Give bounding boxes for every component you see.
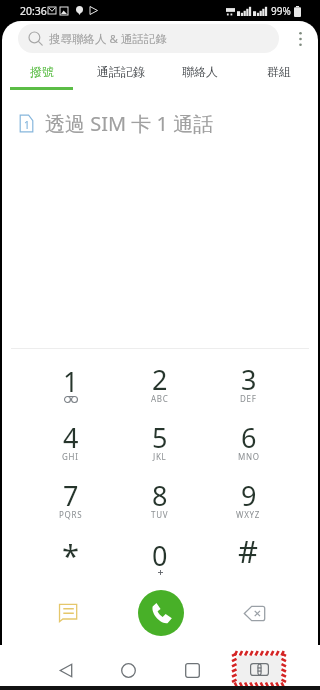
staticText: JKL: [153, 451, 167, 462]
button[interactable]: 5: [115, 407, 204, 465]
button[interactable]: 6: [204, 407, 293, 465]
staticText: 6: [241, 419, 257, 456]
button[interactable]: 通話記錄: [81, 56, 160, 91]
staticText: PQRS: [59, 509, 83, 520]
button[interactable]: 7: [26, 465, 115, 523]
button[interactable]: Backspace: [207, 581, 300, 645]
staticText: 透過 SIM 卡 1 通話: [45, 110, 214, 137]
button[interactable]: 1: [26, 349, 115, 407]
staticText: DEF: [240, 393, 257, 404]
button[interactable]: 3: [204, 349, 293, 407]
button[interactable]: Home: [110, 652, 146, 688]
button[interactable]: 群組: [239, 56, 318, 91]
staticText: 8: [152, 477, 168, 514]
staticText: 1: [24, 118, 30, 132]
staticText: 4: [63, 419, 79, 456]
staticText: 0: [152, 537, 168, 574]
button[interactable]: 聯絡人: [160, 56, 239, 91]
button[interactable]: #: [204, 523, 293, 581]
staticText: 聯絡人: [182, 64, 218, 79]
staticText: 通話記錄: [97, 64, 145, 79]
button[interactable]: Pop-up view: [232, 651, 286, 687]
button[interactable]: 2: [115, 349, 204, 407]
staticText: 20:36: [20, 4, 47, 18]
staticText: MNO: [238, 451, 260, 462]
button[interactable]: 撥號: [2, 56, 81, 91]
staticText: *: [62, 534, 80, 576]
staticText: 7: [63, 477, 79, 514]
button[interactable]: *: [26, 523, 115, 581]
button[interactable]: Send message: [20, 581, 114, 645]
staticText: 撥號: [30, 64, 54, 79]
staticText: TUV: [151, 509, 169, 520]
staticText: 搜尋聯絡人 & 通話記錄: [49, 31, 167, 47]
button[interactable]: 0: [115, 523, 204, 581]
button[interactable]: Back: [48, 652, 84, 688]
staticText: #: [238, 530, 259, 572]
staticText: 2: [152, 361, 168, 398]
staticText: ABC: [151, 393, 169, 404]
staticText: 9: [241, 477, 257, 514]
staticText: 群組: [267, 64, 291, 79]
button[interactable]: 8: [115, 465, 204, 523]
button[interactable]: Call: [138, 590, 184, 636]
staticText: 1: [63, 363, 79, 400]
button[interactable]: 4: [26, 407, 115, 465]
staticText: 5: [152, 419, 168, 456]
button[interactable]: 搜尋聯絡人 & 通話記錄: [18, 24, 279, 53]
staticText: 99%: [271, 4, 291, 18]
button[interactable]: More options: [282, 21, 318, 56]
staticText: WXYZ: [236, 509, 261, 520]
staticText: GHI: [62, 451, 79, 462]
staticText: 3: [241, 361, 257, 398]
button[interactable]: 9: [204, 465, 293, 523]
button[interactable]: Recent apps: [174, 652, 210, 688]
